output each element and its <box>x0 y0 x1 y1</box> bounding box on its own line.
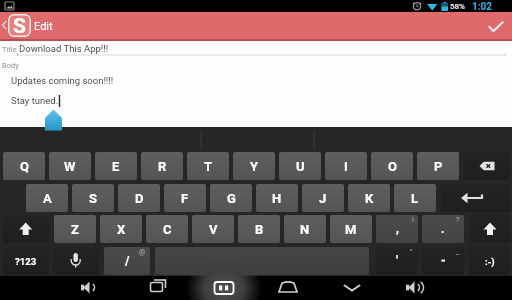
button[interactable]: - <box>422 247 464 275</box>
button[interactable]: M <box>330 215 372 243</box>
staticText: :-) <box>485 256 495 267</box>
staticText: ' <box>396 254 398 268</box>
button[interactable]: C <box>146 215 188 243</box>
staticText: G <box>227 191 236 206</box>
button[interactable] <box>330 276 374 300</box>
staticText: Title <box>2 45 17 54</box>
button[interactable]: B <box>238 215 280 243</box>
button[interactable] <box>464 152 510 180</box>
button[interactable]: I <box>325 152 367 180</box>
staticText: Stay tuned. <box>11 95 59 106</box>
staticText: . <box>441 222 445 236</box>
button[interactable] <box>476 12 512 38</box>
staticText: @ <box>139 248 146 256</box>
staticText: Updates coming soon!!!! <box>11 75 114 86</box>
staticText: ! <box>412 216 414 224</box>
button[interactable] <box>136 276 180 300</box>
staticText: J <box>319 191 327 206</box>
staticText: Z <box>71 222 79 237</box>
staticText: K <box>365 191 374 206</box>
staticText: S <box>13 14 26 37</box>
button[interactable] <box>394 276 438 300</box>
button[interactable]: K <box>348 184 390 212</box>
button[interactable]: U <box>279 152 321 180</box>
staticText: ? <box>456 216 460 224</box>
staticText: _ <box>456 248 460 256</box>
staticText: Q <box>20 159 29 174</box>
staticText: , <box>396 222 399 236</box>
staticText: O <box>388 159 397 174</box>
staticText: ?123 <box>15 256 37 267</box>
button[interactable]: D <box>118 184 160 212</box>
button[interactable]: V <box>192 215 234 243</box>
staticText: I <box>344 159 348 174</box>
button[interactable]: T <box>187 152 229 180</box>
staticText: P <box>434 159 443 174</box>
staticText: U <box>296 159 305 174</box>
staticText: T <box>204 159 213 174</box>
button[interactable]: ?123 <box>3 247 49 275</box>
button[interactable] <box>67 276 111 300</box>
staticText: D <box>135 191 144 206</box>
button[interactable] <box>3 215 49 243</box>
staticText: / <box>125 254 130 268</box>
staticText: 1:02 <box>472 1 493 13</box>
staticText: - <box>441 254 446 268</box>
button[interactable]: X <box>100 215 142 243</box>
staticText: W <box>64 159 76 174</box>
staticText: F <box>181 191 189 206</box>
staticText: E <box>112 159 120 174</box>
button[interactable]: :-) <box>469 247 510 275</box>
staticText: M <box>345 222 357 237</box>
staticText: C <box>163 222 172 237</box>
button[interactable]: G <box>210 184 252 212</box>
button[interactable]: , <box>376 215 418 243</box>
button[interactable]: Q <box>3 152 45 180</box>
staticText: ” <box>410 248 413 256</box>
staticText: 58% <box>450 2 465 11</box>
staticText: S <box>89 191 97 206</box>
button[interactable]: Y <box>233 152 275 180</box>
button[interactable]: J <box>302 184 344 212</box>
button[interactable]: ' <box>376 247 417 275</box>
button[interactable]: O <box>371 152 413 180</box>
button[interactable]: Z <box>54 215 96 243</box>
staticText: Download This App!!! <box>19 43 109 54</box>
button[interactable] <box>266 276 310 300</box>
button[interactable]: R <box>141 152 183 180</box>
staticText: X <box>117 222 126 237</box>
staticText: Y <box>250 159 259 174</box>
button[interactable]: S <box>0 12 110 38</box>
staticText: N <box>300 222 310 237</box>
button[interactable] <box>441 184 510 212</box>
button[interactable]: F <box>164 184 206 212</box>
staticText: Edit <box>34 20 53 33</box>
staticText: A <box>43 191 52 206</box>
button[interactable] <box>470 215 510 243</box>
button[interactable]: P <box>417 152 459 180</box>
staticText: B <box>255 222 264 237</box>
button[interactable]: S <box>72 184 114 212</box>
staticText: Body <box>2 61 19 70</box>
button[interactable]: H <box>256 184 298 212</box>
staticText: R <box>158 159 167 174</box>
button[interactable]: A <box>26 184 68 212</box>
button[interactable]: . <box>422 215 464 243</box>
staticText: H <box>272 191 282 206</box>
staticText: L <box>411 191 419 206</box>
staticText: V <box>209 222 218 237</box>
button[interactable]: L <box>394 184 436 212</box>
button[interactable] <box>53 247 99 275</box>
button[interactable]: W <box>49 152 91 180</box>
button[interactable]: / <box>104 247 150 275</box>
button[interactable]: N <box>284 215 326 243</box>
button[interactable] <box>202 276 246 300</box>
button[interactable]: E <box>95 152 137 180</box>
